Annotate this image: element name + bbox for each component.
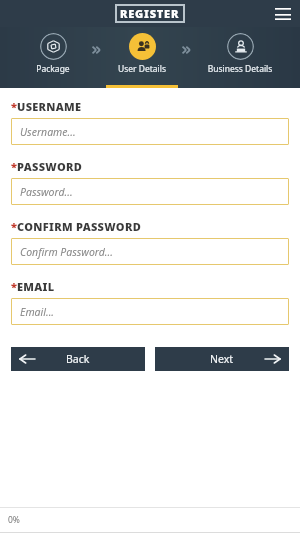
staticText: * <box>11 99 17 114</box>
button[interactable]: Back <box>11 347 145 371</box>
button[interactable]: Business Details <box>194 33 286 75</box>
button[interactable]: Confirm Password... <box>11 238 289 265</box>
staticText: Password... <box>20 185 73 199</box>
staticText: Back <box>66 352 90 366</box>
staticText: Username... <box>20 125 76 139</box>
staticText: Confirm Password... <box>20 245 113 259</box>
staticText: Next <box>210 352 234 366</box>
button[interactable]: User Details <box>104 33 180 75</box>
button[interactable]: Password... <box>11 178 289 205</box>
button[interactable]: Menu <box>272 3 294 25</box>
staticText: * <box>11 159 17 174</box>
staticText: REGISTER <box>120 6 180 21</box>
button[interactable]: Username... <box>11 118 289 145</box>
staticText: USERNAME <box>17 99 82 114</box>
staticText: EMAIL <box>17 279 55 294</box>
staticText: * <box>11 219 17 234</box>
button[interactable]: Package <box>16 33 90 75</box>
staticText: Package <box>16 63 90 75</box>
staticText: User Details <box>104 63 180 75</box>
button[interactable]: Next <box>155 347 289 371</box>
staticText: 0% <box>8 514 20 526</box>
button[interactable]: REGISTER <box>120 6 180 21</box>
staticText: Business Details <box>194 63 286 75</box>
staticText: PASSWORD <box>17 159 83 174</box>
button[interactable]: Email... <box>11 298 289 325</box>
staticText: * <box>11 279 17 294</box>
staticText: CONFIRM PASSWORD <box>17 219 142 234</box>
staticText: Email... <box>20 305 55 319</box>
